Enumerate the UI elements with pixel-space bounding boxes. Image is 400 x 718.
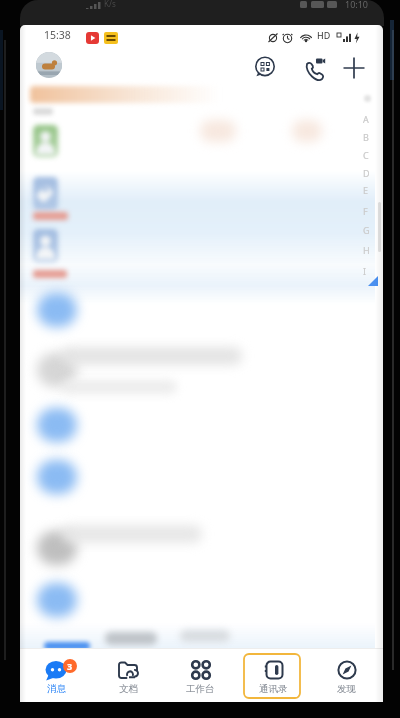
staticText: 文档	[119, 683, 138, 695]
staticText: 消息	[47, 683, 66, 695]
staticText: 3	[67, 660, 73, 672]
button[interactable]: 通讯录	[237, 648, 310, 702]
staticText: F	[363, 205, 368, 217]
staticText: 15:38	[44, 28, 71, 42]
button[interactable]	[340, 54, 368, 82]
button[interactable]	[36, 52, 62, 78]
button[interactable]: 发现	[310, 648, 383, 702]
staticText: G	[363, 224, 370, 236]
staticText: B	[363, 131, 369, 143]
button[interactable]: 3	[20, 648, 92, 702]
staticText: 发现	[337, 683, 356, 695]
button[interactable]: 文档	[92, 648, 164, 702]
staticText: E	[363, 184, 369, 196]
staticText: D	[363, 167, 370, 179]
staticText: HD	[317, 29, 331, 41]
staticText: A	[363, 113, 369, 125]
staticText: 10:10	[345, 0, 369, 10]
button[interactable]: 工作台	[164, 648, 237, 702]
staticText: I	[363, 265, 367, 277]
button[interactable]	[252, 54, 278, 80]
staticText: 工作台	[186, 683, 215, 695]
button[interactable]	[300, 54, 328, 82]
staticText: 通讯录	[259, 683, 288, 695]
staticText: H	[363, 244, 370, 256]
staticText: K/s	[104, 0, 116, 9]
staticText: C	[363, 149, 369, 161]
